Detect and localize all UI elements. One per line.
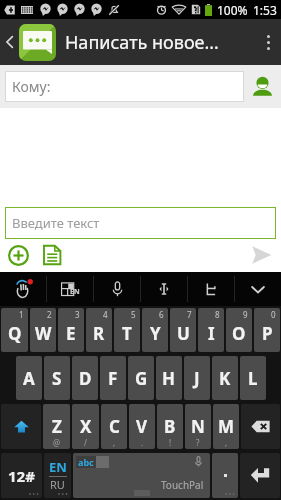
button[interactable]: Send bbox=[247, 240, 276, 269]
button[interactable]: J bbox=[184, 356, 210, 400]
button[interactable]: I bbox=[198, 308, 224, 352]
staticText: 1:53 bbox=[253, 2, 277, 18]
staticText: Q bbox=[8, 322, 22, 345]
button[interactable]: H bbox=[156, 356, 182, 400]
button[interactable]: Cursor control bbox=[141, 272, 187, 306]
staticText: G bbox=[135, 367, 148, 390]
staticText: W bbox=[35, 322, 52, 345]
staticText: 7 bbox=[187, 309, 192, 320]
staticText: Кому: bbox=[12, 77, 51, 96]
staticText: E bbox=[66, 322, 76, 345]
button[interactable]: P bbox=[254, 308, 280, 352]
button[interactable]: B bbox=[157, 404, 183, 449]
staticText: F bbox=[108, 367, 118, 390]
button[interactable]: Q bbox=[1, 308, 28, 352]
staticText: J bbox=[194, 367, 200, 390]
button[interactable]: N bbox=[185, 404, 211, 449]
button[interactable]: C bbox=[101, 404, 127, 449]
staticText: RU bbox=[50, 477, 65, 492]
button[interactable]: More options bbox=[255, 19, 281, 65]
staticText: . bbox=[141, 437, 144, 448]
staticText: I bbox=[208, 322, 215, 345]
staticText: H bbox=[162, 367, 176, 390]
staticText: K bbox=[219, 367, 231, 390]
button[interactable]: Hide keyboard bbox=[235, 272, 281, 306]
staticText: Написать новое… bbox=[65, 30, 219, 55]
button[interactable]: Shift bbox=[1, 404, 41, 449]
button[interactable]: Кому: bbox=[5, 71, 244, 102]
staticText: Y bbox=[150, 322, 161, 345]
staticText: ? bbox=[196, 437, 200, 448]
staticText: 3 bbox=[75, 309, 80, 320]
staticText: O bbox=[232, 322, 246, 345]
button[interactable]: Add attachment bbox=[5, 242, 31, 268]
button[interactable]: W bbox=[30, 308, 56, 352]
staticText: C bbox=[109, 415, 120, 438]
button[interactable]: F bbox=[100, 356, 126, 400]
button[interactable]: Введите текст bbox=[5, 207, 276, 239]
staticText: Введите текст bbox=[12, 214, 100, 232]
staticText: EN bbox=[49, 458, 67, 476]
staticText: A bbox=[23, 367, 35, 390]
button[interactable]: Templates bbox=[39, 242, 65, 268]
button[interactable]: Y bbox=[142, 308, 168, 352]
staticText: @ bbox=[53, 437, 61, 448]
staticText: X bbox=[80, 415, 92, 438]
staticText: 2 bbox=[47, 309, 52, 320]
staticText: , bbox=[113, 437, 116, 448]
staticText: L bbox=[248, 367, 258, 390]
button[interactable]: Pick contact bbox=[244, 71, 281, 102]
button[interactable]: X bbox=[72, 404, 99, 449]
button[interactable]: 12# bbox=[1, 453, 42, 498]
staticText: / bbox=[84, 437, 87, 448]
button[interactable]: G bbox=[128, 356, 154, 400]
button[interactable]: K bbox=[212, 356, 238, 400]
button[interactable]: O bbox=[226, 308, 252, 352]
staticText: abc bbox=[78, 456, 94, 468]
button[interactable]: M bbox=[213, 404, 239, 449]
button[interactable]: Enter bbox=[240, 453, 280, 498]
button[interactable]: E bbox=[58, 308, 84, 352]
button[interactable]: V bbox=[129, 404, 155, 449]
staticText: ! bbox=[169, 437, 172, 448]
staticText: 1 bbox=[19, 309, 24, 320]
staticText: T bbox=[122, 322, 132, 345]
button[interactable]: Period bbox=[212, 453, 238, 498]
button[interactable]: Backspace bbox=[241, 404, 280, 449]
button[interactable]: Switch language bbox=[44, 453, 71, 498]
staticText: N bbox=[191, 415, 205, 438]
button[interactable]: Z bbox=[43, 404, 70, 449]
staticText: P bbox=[262, 322, 273, 345]
staticText: TouchPal bbox=[161, 478, 204, 492]
button[interactable]: S bbox=[44, 356, 70, 400]
button[interactable]: Handwriting bbox=[0, 272, 46, 306]
staticText: 8 bbox=[215, 309, 220, 320]
button[interactable]: Keyboard layout bbox=[47, 272, 93, 306]
staticText: M bbox=[218, 415, 235, 438]
staticText: 100% bbox=[217, 2, 248, 18]
staticText: R bbox=[93, 322, 105, 345]
staticText: V bbox=[136, 415, 148, 438]
staticText: 4 bbox=[103, 309, 108, 320]
button[interactable]: L bbox=[240, 356, 266, 400]
button[interactable]: Navigate up bbox=[0, 19, 56, 65]
button[interactable]: R bbox=[86, 308, 112, 352]
staticText: 6 bbox=[159, 309, 164, 320]
staticText: D bbox=[79, 367, 92, 390]
button[interactable]: U bbox=[170, 308, 196, 352]
button[interactable]: A bbox=[16, 356, 42, 400]
staticText: U bbox=[177, 322, 190, 345]
button[interactable]: T bbox=[114, 308, 140, 352]
staticText: 12# bbox=[8, 466, 35, 486]
button[interactable]: Voice input bbox=[94, 272, 140, 306]
staticText: 5 bbox=[131, 309, 136, 320]
staticText: 0 bbox=[271, 309, 276, 320]
button[interactable]: Space bbox=[73, 453, 210, 498]
staticText: S bbox=[52, 367, 62, 390]
staticText: EN bbox=[70, 287, 80, 297]
button[interactable]: D bbox=[72, 356, 98, 400]
staticText: 9 bbox=[243, 309, 248, 320]
staticText: Z bbox=[52, 415, 62, 438]
staticText: , bbox=[225, 437, 228, 448]
button[interactable]: Emoji bbox=[188, 272, 234, 306]
